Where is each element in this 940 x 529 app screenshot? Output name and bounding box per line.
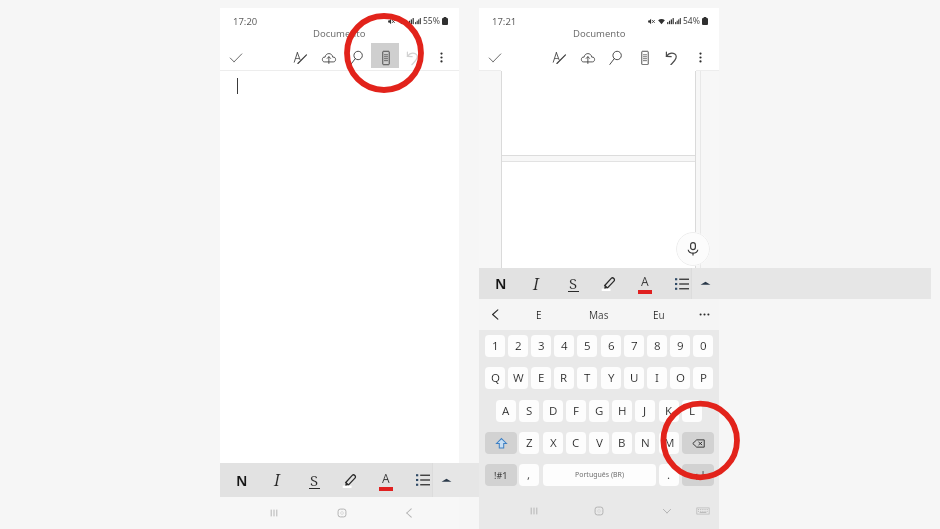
button[interactable]: Underline: [299, 463, 329, 497]
button[interactable]: Z: [519, 432, 539, 454]
button[interactable]: More options: [428, 45, 454, 70]
staticText: Português (BR): [575, 470, 625, 480]
button[interactable]: Spelling: [546, 45, 572, 70]
button[interactable]: A: [496, 400, 516, 422]
button[interactable]: Highlight: [593, 268, 623, 299]
button[interactable]: 5: [577, 335, 597, 357]
button[interactable]: N: [635, 432, 655, 454]
button[interactable]: Underline: [558, 268, 588, 299]
button[interactable]: Reading view: [373, 45, 399, 70]
button[interactable]: Bold: [227, 463, 257, 497]
staticText: H: [618, 403, 627, 419]
button[interactable]: Hide keyboard: [653, 492, 681, 529]
button[interactable]: Keyboard: [689, 492, 717, 529]
button[interactable]: Search: [603, 45, 629, 70]
button[interactable]: Collapse: [431, 463, 461, 497]
button[interactable]: L: [682, 400, 702, 422]
button[interactable]: V: [589, 432, 609, 454]
button[interactable]: E: [531, 367, 551, 389]
button[interactable]: Italic: [262, 463, 292, 497]
button[interactable]: K: [659, 400, 679, 422]
button[interactable]: Undo: [400, 45, 426, 70]
button[interactable]: 9: [670, 335, 690, 357]
button[interactable]: Reading view: [632, 45, 658, 70]
button[interactable]: X: [543, 432, 563, 454]
button[interactable]: M: [659, 432, 679, 454]
staticText: A: [502, 403, 510, 419]
button[interactable]: Enter: [682, 464, 714, 486]
button[interactable]: Undo: [659, 45, 685, 70]
button[interactable]: Text colour: [371, 463, 401, 497]
button[interactable]: C: [566, 432, 586, 454]
button[interactable]: D: [543, 400, 563, 422]
button[interactable]: Back: [395, 497, 423, 529]
button[interactable]: Bold: [486, 268, 516, 299]
button[interactable]: Shift: [485, 432, 517, 454]
button[interactable]: 2: [508, 335, 528, 357]
button[interactable]: 7: [624, 335, 644, 357]
staticText: A: [382, 470, 390, 486]
button[interactable]: List: [667, 268, 697, 299]
button[interactable]: O: [670, 367, 690, 389]
staticText: E: [536, 308, 542, 322]
button[interactable]: Home: [328, 497, 356, 529]
button[interactable]: Mas: [574, 299, 624, 330]
button[interactable]: 0: [693, 335, 713, 357]
staticText: Z: [526, 435, 533, 451]
button[interactable]: Backspace: [682, 432, 714, 454]
button[interactable]: H: [612, 400, 632, 422]
staticText: G: [595, 403, 604, 419]
button[interactable]: Collapse: [690, 268, 720, 299]
button[interactable]: Text colour: [630, 268, 660, 299]
button[interactable]: 1: [485, 335, 505, 357]
button[interactable]: Upload: [316, 45, 342, 70]
button[interactable]: F: [566, 400, 586, 422]
button[interactable]: B: [612, 432, 632, 454]
staticText: O: [676, 370, 685, 386]
button[interactable]: Recents: [260, 497, 288, 529]
button[interactable]: J: [635, 400, 655, 422]
button[interactable]: E: [514, 299, 564, 330]
button[interactable]: Done: [223, 45, 249, 70]
staticText: X: [550, 435, 557, 451]
button[interactable]: More options: [687, 45, 713, 70]
button[interactable]: Done: [482, 45, 508, 70]
button[interactable]: 4: [554, 335, 574, 357]
button[interactable]: More suggestions: [690, 299, 718, 330]
button[interactable]: Voice input: [676, 232, 710, 266]
button[interactable]: Eu: [634, 299, 684, 330]
button[interactable]: Upload: [575, 45, 601, 70]
button[interactable]: Space: [543, 464, 656, 486]
button[interactable]: Spelling: [287, 45, 313, 70]
button[interactable]: List: [408, 463, 438, 497]
button[interactable]: Search: [344, 45, 370, 70]
button[interactable]: Previous suggestion: [481, 299, 509, 330]
button[interactable]: Highlight: [334, 463, 364, 497]
button[interactable]: Home: [585, 492, 613, 529]
button[interactable]: Recents: [520, 492, 548, 529]
button[interactable]: T: [577, 367, 597, 389]
staticText: S: [569, 273, 578, 293]
button[interactable]: 8: [647, 335, 667, 357]
button[interactable]: P: [693, 367, 713, 389]
button[interactable]: Q: [485, 367, 505, 389]
button[interactable]: R: [554, 367, 574, 389]
button[interactable]: S: [519, 400, 539, 422]
staticText: 54%: [683, 15, 700, 27]
button[interactable]: Y: [601, 367, 621, 389]
button[interactable]: ,: [519, 464, 539, 486]
staticText: A: [641, 273, 649, 289]
button[interactable]: Italic: [521, 268, 551, 299]
button[interactable]: 6: [601, 335, 621, 357]
button[interactable]: U: [624, 367, 644, 389]
button[interactable]: .: [659, 464, 679, 486]
button[interactable]: Symbols: [485, 464, 517, 486]
staticText: I: [533, 273, 539, 295]
staticText: Q: [491, 370, 500, 386]
staticText: .: [667, 467, 671, 483]
button[interactable]: I: [647, 367, 667, 389]
button[interactable]: W: [508, 367, 528, 389]
button[interactable]: 3: [531, 335, 551, 357]
staticText: B: [618, 435, 626, 451]
button[interactable]: G: [589, 400, 609, 422]
